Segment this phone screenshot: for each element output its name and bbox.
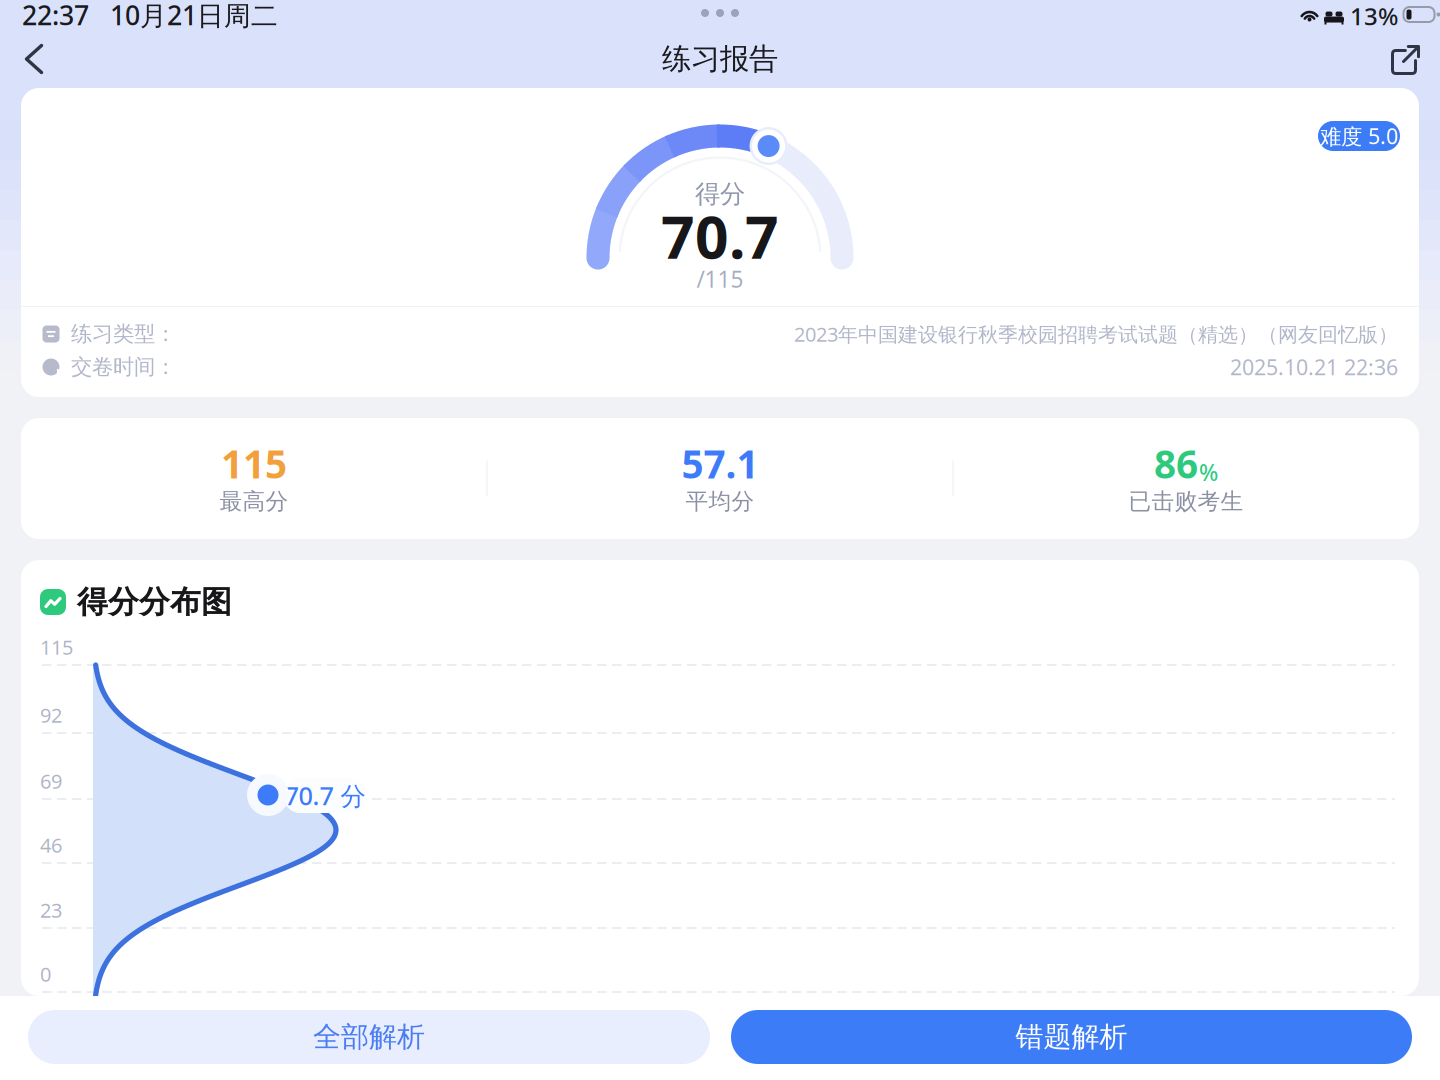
staticText: 70.7 — [661, 197, 779, 275]
staticText: 13% — [1350, 0, 1398, 32]
button[interactable]: 错题解析 — [731, 1010, 1412, 1064]
staticText: 2025.10.21 22:36 — [1230, 353, 1398, 381]
staticText: % — [1199, 457, 1218, 487]
staticText: 已击败考生 — [1128, 488, 1243, 515]
staticText: 练习报告 — [662, 41, 778, 77]
staticText: 得分分布图 — [77, 583, 232, 621]
staticText: 22:37 — [22, 0, 89, 33]
button[interactable]: Back — [6, 31, 62, 87]
staticText: 57.1 — [681, 438, 758, 489]
staticText: 最高分 — [219, 488, 288, 515]
staticText: 交卷时间： — [71, 354, 176, 380]
staticText: 10月21日周二 — [110, 0, 278, 33]
staticText: 0 — [40, 961, 51, 987]
button[interactable]: Share — [1378, 31, 1434, 87]
staticText: /115 — [696, 264, 743, 294]
staticText: 2023年中国建设银行秋季校园招聘考试试题（精选）（网友回忆版） — [794, 321, 1398, 347]
button[interactable]: 全部解析 — [28, 1010, 710, 1064]
staticText: 23 — [40, 897, 62, 923]
staticText: 86 — [1154, 438, 1198, 489]
staticText: 46 — [40, 832, 62, 858]
staticText: 全部解析 — [313, 1020, 425, 1054]
staticText: 练习类型： — [71, 321, 176, 347]
staticText: 115 — [221, 438, 287, 489]
staticText: 69 — [40, 768, 62, 794]
staticText: 难度 5.0 — [1320, 122, 1398, 150]
staticText: 得分 — [695, 178, 745, 209]
staticText: 70.7 分 — [284, 779, 365, 812]
staticText: 平均分 — [685, 488, 754, 515]
staticText: 92 — [40, 702, 62, 728]
staticText: 115 — [40, 634, 73, 660]
staticText: 错题解析 — [1015, 1020, 1127, 1054]
